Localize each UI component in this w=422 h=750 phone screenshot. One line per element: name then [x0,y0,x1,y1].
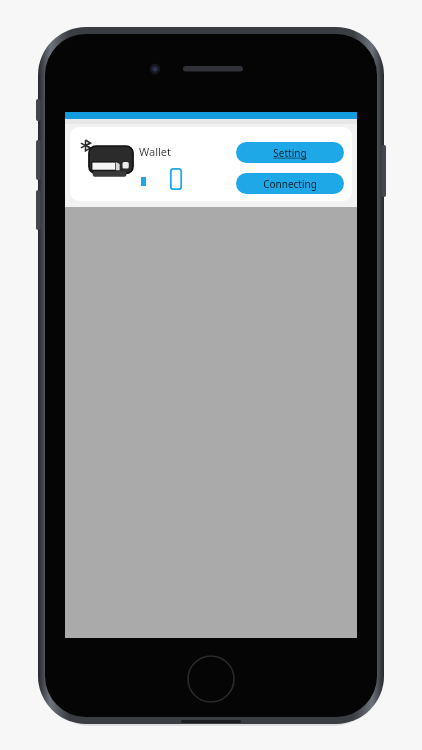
button[interactable]: Connecting [236,173,344,194]
button[interactable]: Bluetooth [70,127,352,201]
other: Phone battery [170,168,182,190]
other: Wallet device [87,146,135,178]
staticText: Connecting [263,177,317,191]
other: Bluetooth [80,140,91,151]
staticText: Wallet [139,144,172,159]
button[interactable]: Setting [236,142,344,163]
staticText: Setting [273,146,307,160]
